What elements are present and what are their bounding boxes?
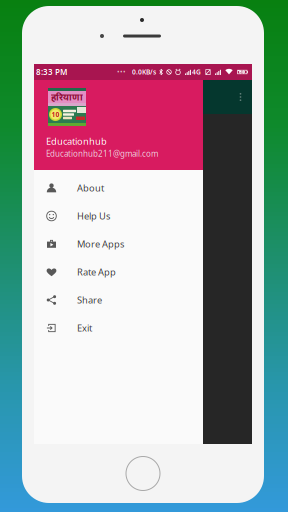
staticText: About — [77, 182, 104, 194]
staticText: Help Us — [77, 210, 110, 222]
button[interactable]: Rate App — [34, 258, 203, 286]
staticText: 4G — [192, 68, 201, 76]
staticText: Educationhub211@gmail.com — [46, 148, 158, 159]
button[interactable]: Help Us — [34, 202, 203, 230]
button[interactable]: Exit — [34, 314, 203, 342]
staticText: Share — [77, 294, 102, 306]
staticText: Educationhub — [46, 135, 107, 147]
button[interactable]: Share — [34, 286, 203, 314]
staticText: 0.0KB/s — [132, 68, 156, 76]
staticText: हरियाणा — [51, 91, 83, 103]
staticText: More Apps — [77, 238, 124, 250]
staticText: Rate App — [77, 266, 116, 278]
button[interactable]: About — [34, 174, 203, 202]
staticText: ••• — [117, 68, 126, 76]
staticText: Exit — [77, 322, 92, 334]
staticText: 8:33 PM — [36, 67, 67, 77]
staticText: 10 — [51, 110, 59, 119]
button[interactable]: More Apps — [34, 230, 203, 258]
button[interactable]: More options — [235, 89, 246, 105]
